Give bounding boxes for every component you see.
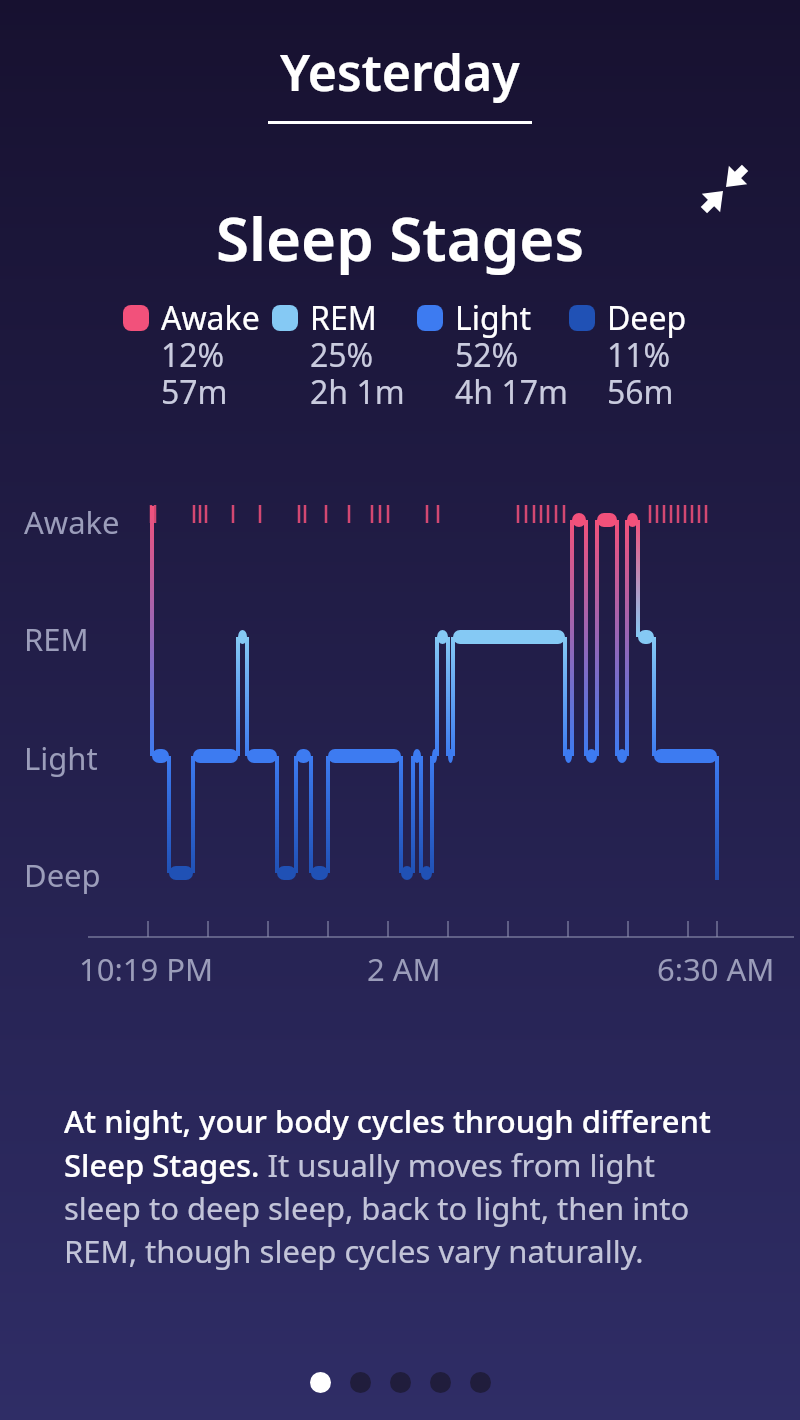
staticText: Sleep Stages. It usually moves from ligh… <box>64 1144 656 1186</box>
staticText: Awake <box>161 296 260 340</box>
staticText: 12% <box>161 333 225 377</box>
staticText: 25% <box>310 333 374 377</box>
staticText: Light <box>24 737 98 779</box>
staticText: sleep to deep sleep, back to light, then… <box>64 1187 690 1229</box>
staticText: 6:30 AM <box>657 948 775 990</box>
staticText: 56m <box>607 370 674 414</box>
button[interactable]: Light <box>417 296 530 340</box>
staticText: Light <box>455 296 532 340</box>
staticText: REM <box>24 618 89 660</box>
staticText: Awake <box>24 501 120 543</box>
staticText: Sleep Stages <box>216 197 585 279</box>
button[interactable]: Awake <box>123 296 222 340</box>
button[interactable] <box>350 1372 371 1393</box>
button[interactable] <box>430 1372 451 1393</box>
button[interactable]: Deep <box>569 296 649 340</box>
staticText: 57m <box>161 370 228 414</box>
button[interactable] <box>310 1372 331 1393</box>
staticText: 10:19 PM <box>79 948 214 990</box>
staticText: REM <box>310 296 377 340</box>
staticText: 52% <box>455 333 519 377</box>
staticText: Yesterday <box>280 38 520 106</box>
button[interactable] <box>698 161 754 217</box>
staticText: REM, though sleep cycles vary naturally. <box>64 1230 644 1272</box>
staticText: 2h 1m <box>310 370 405 414</box>
staticText: 2 AM <box>367 948 441 990</box>
staticText: At night, your body cycles through diffe… <box>64 1100 711 1142</box>
button[interactable] <box>470 1372 491 1393</box>
staticText: Deep <box>24 854 101 896</box>
button[interactable] <box>390 1372 411 1393</box>
staticText: Deep <box>607 296 687 340</box>
staticText: 4h 17m <box>455 370 568 414</box>
staticText: 11% <box>607 333 671 377</box>
button[interactable]: REM <box>272 296 367 340</box>
